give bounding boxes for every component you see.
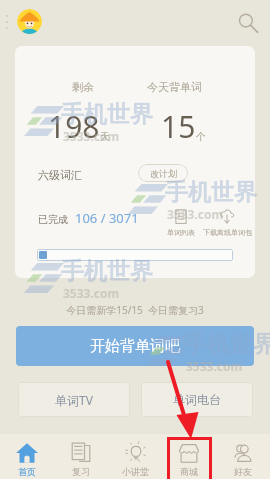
staticText: 3533.com <box>63 285 120 301</box>
button[interactable]: 改计划 <box>138 164 188 182</box>
staticText: 剩余 <box>72 80 94 94</box>
staticText: 改计划 <box>150 168 177 179</box>
button[interactable]: 单词列表 <box>161 209 201 237</box>
staticText: 开始背单词吧 <box>90 337 180 356</box>
staticText: 手机世界 <box>61 257 153 286</box>
staticText: 天 <box>100 130 110 143</box>
staticText: 单词TV <box>55 392 93 408</box>
staticText: 单词电台 <box>173 392 221 407</box>
staticText: 已完成 <box>38 213 68 226</box>
button[interactable]: 小讲堂 <box>108 434 162 479</box>
staticText: 复习 <box>72 466 90 477</box>
staticText: 首页 <box>18 466 36 477</box>
staticText: 好友 <box>234 466 252 477</box>
button[interactable]: 好友 <box>216 434 270 479</box>
button[interactable]: 首页 <box>0 434 54 479</box>
staticText: 今天背单词 <box>147 80 202 94</box>
button[interactable]: 开始背单词吧 <box>16 326 254 366</box>
staticText: 3533.com <box>63 128 120 144</box>
button[interactable]: Search <box>236 10 258 32</box>
staticText: 106 / 3071 <box>75 209 139 227</box>
staticText: 手机世界 <box>184 330 270 359</box>
staticText: 198 <box>48 106 100 147</box>
staticText: 单词列表 <box>167 228 195 237</box>
button[interactable]: 商城 <box>162 434 216 479</box>
staticText: 3533.com <box>167 206 224 222</box>
staticText: 3533.com <box>186 358 243 374</box>
button[interactable]: 单词TV <box>18 382 130 417</box>
button[interactable]: 复习 <box>54 434 108 479</box>
button[interactable]: 单词电台 <box>141 382 253 417</box>
staticText: 手机世界 <box>165 178 257 207</box>
staticText: 个 <box>196 130 206 143</box>
staticText: 商城 <box>180 466 198 477</box>
staticText: 小讲堂 <box>122 466 149 477</box>
staticText: 六级词汇 <box>38 168 82 182</box>
staticText: 15 <box>161 106 196 147</box>
button[interactable]: 下载离线单词包 <box>200 209 254 237</box>
staticText: 今日需新学15/15 今日需复习3 <box>0 303 270 317</box>
staticText: 下载离线单词包 <box>203 228 252 237</box>
button[interactable]: Profile <box>17 9 42 34</box>
staticText: 手机世界 <box>61 100 153 129</box>
